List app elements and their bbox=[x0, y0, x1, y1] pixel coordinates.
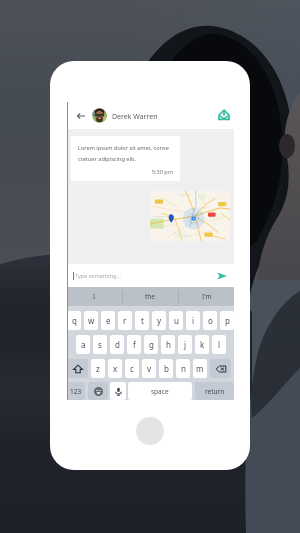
button[interactable]: l bbox=[212, 335, 226, 354]
staticText: q bbox=[72, 315, 77, 326]
button[interactable]: o bbox=[203, 311, 217, 330]
button[interactable]: space bbox=[128, 382, 192, 400]
staticText: f bbox=[133, 339, 136, 350]
button[interactable]: a bbox=[76, 335, 90, 354]
button[interactable]: Emoji bbox=[88, 382, 108, 400]
button[interactable]: Backspace bbox=[210, 359, 231, 378]
staticText: n bbox=[181, 363, 186, 374]
button[interactable]: Shift bbox=[67, 359, 88, 378]
staticText: a bbox=[81, 339, 86, 350]
staticText: r bbox=[123, 315, 127, 326]
button[interactable]: 123 bbox=[67, 382, 85, 400]
button[interactable]: I bbox=[67, 287, 122, 306]
button[interactable]: e bbox=[101, 311, 115, 330]
button[interactable]: I'm bbox=[179, 287, 234, 306]
staticText: v bbox=[147, 363, 152, 374]
button[interactable]: c bbox=[125, 359, 139, 378]
button[interactable]: the bbox=[123, 287, 178, 306]
staticText: t bbox=[141, 315, 144, 326]
staticText: k bbox=[200, 339, 205, 350]
button[interactable]: q bbox=[67, 311, 81, 330]
button[interactable]: f bbox=[127, 335, 141, 354]
button[interactable]: s bbox=[93, 335, 107, 354]
button[interactable]: b bbox=[159, 359, 173, 378]
staticText: y bbox=[157, 315, 162, 326]
button[interactable]: k bbox=[195, 335, 209, 354]
staticText: h bbox=[166, 339, 171, 350]
staticText: return bbox=[205, 387, 225, 396]
button[interactable]: Shared location map bbox=[150, 191, 230, 241]
staticText: Derek Warren bbox=[112, 112, 158, 122]
staticText: u bbox=[174, 315, 179, 326]
staticText: p bbox=[225, 315, 230, 326]
staticText: I'm bbox=[202, 292, 212, 301]
button[interactable]: d bbox=[110, 335, 124, 354]
button[interactable]: v bbox=[142, 359, 156, 378]
button[interactable]: i bbox=[186, 311, 200, 330]
button[interactable]: w bbox=[84, 311, 98, 330]
staticText: c bbox=[130, 363, 134, 374]
button[interactable]: Home bbox=[136, 417, 164, 445]
staticText: i bbox=[192, 315, 195, 326]
staticText: the bbox=[145, 292, 156, 301]
button[interactable]: return bbox=[195, 382, 234, 400]
button[interactable]: h bbox=[161, 335, 175, 354]
button[interactable]: u bbox=[169, 311, 183, 330]
button[interactable]: g bbox=[144, 335, 158, 354]
button[interactable]: t bbox=[135, 311, 149, 330]
button[interactable]: x bbox=[108, 359, 122, 378]
staticText: s bbox=[98, 339, 102, 350]
staticText: z bbox=[96, 363, 100, 374]
staticText: o bbox=[208, 315, 213, 326]
staticText: I bbox=[93, 292, 96, 301]
button[interactable]: j bbox=[178, 335, 192, 354]
staticText: g bbox=[149, 339, 154, 350]
button[interactable]: r bbox=[118, 311, 132, 330]
button[interactable]: y bbox=[152, 311, 166, 330]
staticText: d bbox=[115, 339, 120, 350]
button[interactable]: Back bbox=[73, 108, 88, 123]
staticText: e bbox=[106, 315, 111, 326]
button[interactable]: m bbox=[193, 359, 207, 378]
staticText: x bbox=[113, 363, 118, 374]
staticText: w bbox=[88, 315, 95, 326]
staticText: Type something... bbox=[75, 272, 121, 279]
staticText: j bbox=[184, 339, 187, 350]
button[interactable]: Voice input bbox=[110, 382, 126, 400]
staticText: b bbox=[164, 363, 169, 374]
button[interactable]: n bbox=[176, 359, 190, 378]
button[interactable]: Send bbox=[214, 268, 230, 284]
staticText: ctetuer adipiscing elit. bbox=[78, 155, 136, 163]
button[interactable]: z bbox=[91, 359, 105, 378]
staticText: Lorem ipsum dolor sit amet, conse bbox=[78, 144, 169, 152]
staticText: 123 bbox=[70, 387, 82, 396]
staticText: l bbox=[218, 339, 221, 350]
staticText: space bbox=[151, 387, 169, 396]
staticText: 5:30 pm bbox=[71, 168, 173, 176]
staticText: m bbox=[196, 363, 204, 374]
button[interactable]: p bbox=[220, 311, 234, 330]
button[interactable]: Share location bbox=[215, 106, 233, 124]
